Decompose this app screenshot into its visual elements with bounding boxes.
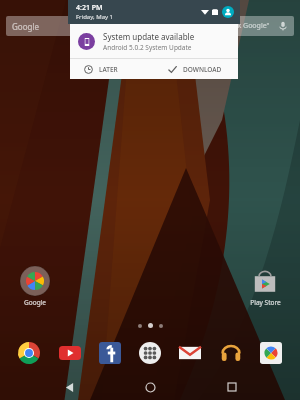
button[interactable]: YouTube <box>55 338 85 368</box>
button[interactable]: LATER <box>70 59 154 79</box>
staticText: 4:21 PM <box>76 3 103 13</box>
button[interactable]: Google folder <box>8 264 62 309</box>
staticText: DOWNLOAD <box>183 65 222 74</box>
staticText: Google <box>24 298 46 307</box>
other: Voice search <box>278 21 288 31</box>
button[interactable]: Gmail <box>175 338 205 368</box>
staticText: System update available <box>103 31 195 42</box>
button[interactable]: Back <box>56 374 82 400</box>
button[interactable]: System update available <box>70 24 238 79</box>
button[interactable]: Chrome <box>14 338 44 368</box>
staticText: Say "Ok Google" <box>216 21 270 31</box>
button[interactable]: DOWNLOAD <box>154 59 238 79</box>
button[interactable]: Play Music <box>216 338 246 368</box>
staticText: LATER <box>99 65 118 74</box>
staticText: Play Store <box>250 298 281 307</box>
button[interactable]: Home <box>137 374 163 400</box>
staticText: Google <box>12 21 39 32</box>
button[interactable]: Play Store <box>238 264 292 309</box>
button[interactable]: Google <box>6 16 294 36</box>
staticText: Friday, May 1 <box>76 13 114 21</box>
button[interactable]: User profile <box>222 6 234 18</box>
button[interactable]: Recents <box>219 374 245 400</box>
staticText: Android 5.0.2 System Update <box>103 43 192 52</box>
button[interactable]: Facebook <box>95 338 125 368</box>
button[interactable]: Photos <box>256 338 286 368</box>
button[interactable]: Apps <box>135 338 165 368</box>
